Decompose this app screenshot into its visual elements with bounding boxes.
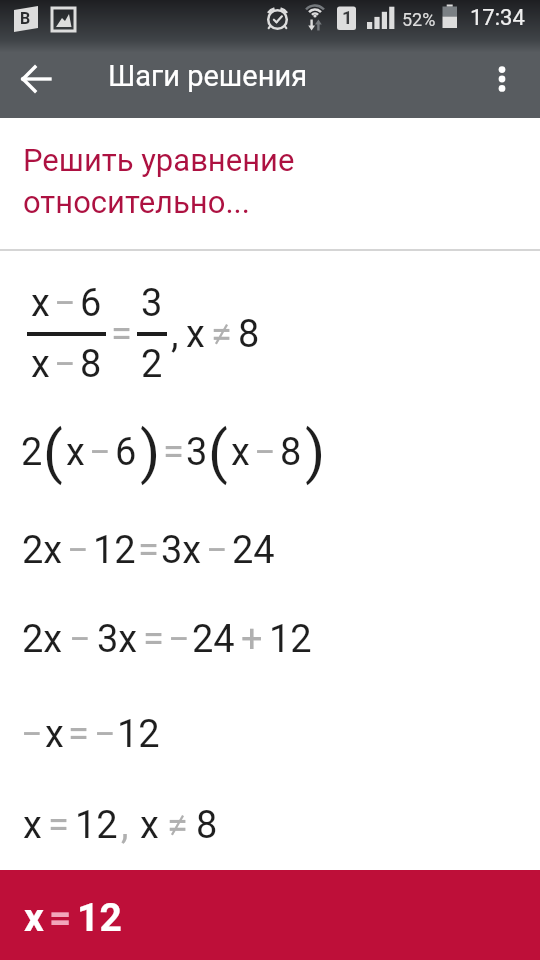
- staticText: 2: [21, 430, 43, 475]
- staticText: −: [168, 617, 190, 662]
- staticText: x: [23, 803, 42, 848]
- staticText: Решить уравнение относительно...: [23, 142, 295, 221]
- staticText: x: [186, 312, 205, 357]
- staticText: 6: [80, 281, 102, 326]
- staticText: 3x: [97, 617, 138, 662]
- staticText: 2: [141, 342, 163, 387]
- button[interactable]: x: [0, 870, 540, 960]
- staticText: −: [206, 528, 228, 573]
- staticText: 12: [117, 712, 160, 757]
- staticText: 6: [115, 430, 137, 475]
- staticText: 12: [77, 895, 122, 941]
- staticText: B: [20, 9, 31, 28]
- staticText: 52%: [402, 9, 436, 30]
- staticText: 8: [80, 342, 102, 387]
- staticText: =: [111, 312, 132, 357]
- staticText: =: [138, 528, 159, 573]
- staticText: 3x: [161, 528, 202, 573]
- staticText: −: [69, 617, 91, 662]
- staticText: 8: [238, 312, 260, 357]
- staticText: Шаги решения: [108, 59, 308, 93]
- staticText: 17:34: [470, 5, 525, 31]
- staticText: 12: [75, 803, 118, 848]
- staticText: 8: [280, 430, 302, 475]
- staticText: x: [45, 712, 64, 757]
- staticText: ≠: [211, 312, 232, 357]
- staticText: ≠: [167, 803, 188, 848]
- staticText: 24: [192, 617, 235, 662]
- staticText: −: [21, 712, 43, 757]
- staticText: =: [48, 803, 69, 848]
- staticText: =: [68, 712, 89, 757]
- staticText: =: [163, 430, 184, 475]
- staticText: +: [241, 617, 263, 662]
- staticText: (: [43, 418, 63, 486]
- staticText: =: [143, 617, 164, 662]
- button[interactable]: [10, 53, 62, 105]
- staticText: x: [66, 430, 85, 475]
- button[interactable]: [480, 57, 524, 101]
- staticText: −: [254, 430, 276, 475]
- staticText: −: [54, 342, 76, 387]
- staticText: 1: [342, 7, 353, 28]
- staticText: x: [31, 281, 50, 326]
- staticText: 12: [93, 528, 136, 573]
- staticText: 12: [269, 617, 312, 662]
- staticText: −: [89, 430, 111, 475]
- staticText: x: [24, 895, 44, 941]
- staticText: x: [31, 342, 50, 387]
- staticText: x: [140, 803, 159, 848]
- staticText: 8: [196, 803, 218, 848]
- staticText: 3: [141, 281, 163, 326]
- staticText: −: [67, 528, 89, 573]
- staticText: −: [54, 281, 76, 326]
- staticText: 24: [232, 528, 275, 573]
- staticText: ): [140, 418, 161, 486]
- staticText: −: [94, 712, 116, 757]
- staticText: 3: [186, 430, 208, 475]
- staticText: (: [208, 418, 228, 486]
- staticText: ,: [171, 312, 179, 357]
- staticText: 2x: [22, 617, 63, 662]
- staticText: x: [231, 430, 250, 475]
- staticText: ): [305, 418, 326, 486]
- staticText: =: [49, 895, 72, 941]
- staticText: 2x: [22, 528, 63, 573]
- staticText: ,: [121, 803, 129, 848]
